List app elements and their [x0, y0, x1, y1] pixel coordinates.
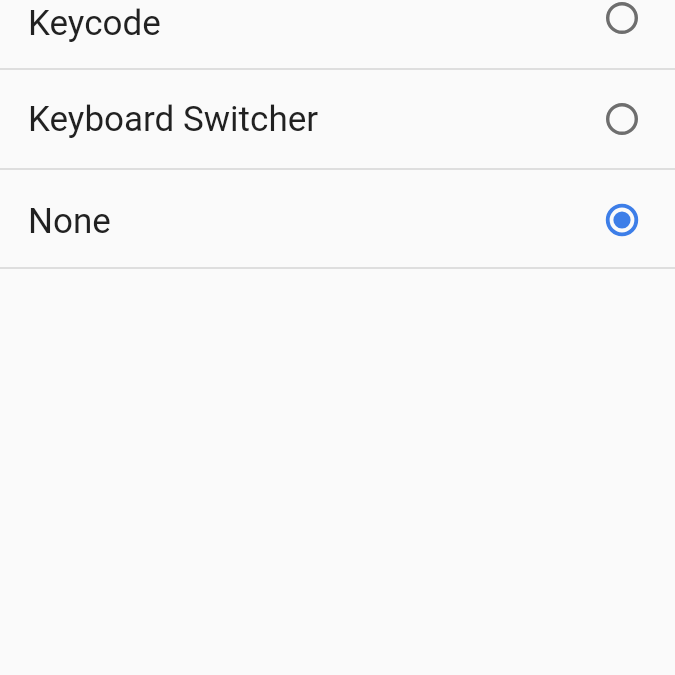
- button[interactable]: None: [0, 170, 675, 267]
- staticText: Keyboard Switcher: [28, 99, 319, 140]
- staticText: Keycode: [28, 3, 161, 44]
- button[interactable]: Keyboard Switcher: [0, 70, 675, 168]
- button[interactable]: Keycode: [0, 0, 675, 68]
- staticText: None: [28, 201, 111, 242]
